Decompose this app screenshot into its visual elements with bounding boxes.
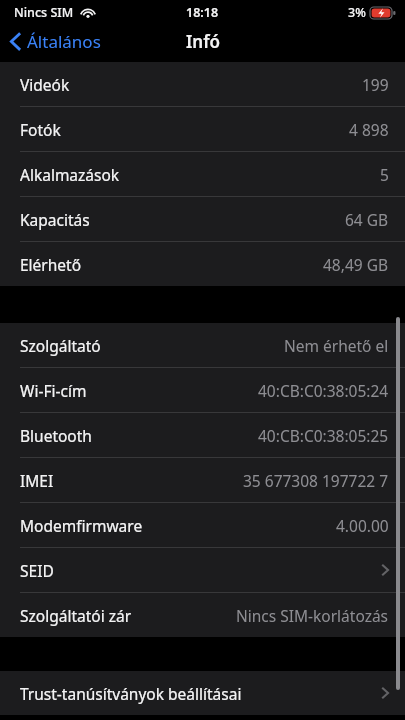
staticText: Nincs SIM [14, 4, 74, 21]
staticText: Nem érhető el [284, 335, 389, 356]
staticText: 4 898 [349, 119, 389, 140]
staticText: 64 GB [345, 209, 389, 230]
staticText: 3% [348, 4, 366, 21]
button[interactable]: Szolgáltató [0, 323, 405, 367]
button[interactable]: Elérhető [0, 242, 405, 286]
staticText: Wi-Fi-cím [20, 380, 87, 401]
button[interactable]: Videók [0, 62, 405, 106]
staticText: Trust-tanúsítványok beállításai [20, 683, 242, 704]
staticText: Általános [27, 30, 101, 53]
button[interactable]: Bluetooth [0, 413, 405, 457]
button[interactable]: SEID [0, 548, 405, 592]
staticText: 48,49 GB [323, 254, 389, 275]
staticText: 199 [362, 74, 389, 95]
staticText: IMEI [20, 470, 54, 491]
staticText: Infó [186, 30, 220, 53]
staticText: Szolgáltató [20, 335, 101, 356]
button[interactable]: Szolgáltatói zár [0, 593, 405, 637]
staticText: Fotók [20, 119, 61, 140]
staticText: 18:18 [186, 4, 219, 21]
button[interactable]: Fotók [0, 107, 405, 151]
staticText: Nincs SIM-korlátozás [236, 605, 389, 626]
staticText: Szolgáltatói zár [20, 605, 132, 626]
staticText: SEID [20, 560, 54, 581]
button[interactable]: Alkalmazások [0, 152, 405, 196]
staticText: 4.00.00 [336, 515, 389, 536]
button[interactable]: Modemfirmware [0, 503, 405, 547]
staticText: Videók [20, 74, 70, 95]
staticText: 35 677308 197722 7 [243, 470, 389, 491]
button[interactable]: Back to Általános [0, 26, 109, 57]
staticText: Modemfirmware [20, 515, 143, 536]
staticText: 40:CB:C0:38:05:24 [258, 380, 389, 401]
staticText: Elérhető [20, 254, 82, 275]
staticText: Bluetooth [20, 425, 92, 446]
button[interactable]: Kapacitás [0, 197, 405, 241]
button[interactable]: Trust-tanúsítványok beállításai [0, 671, 405, 715]
button[interactable]: IMEI [0, 458, 405, 502]
button[interactable]: Wi-Fi-cím [0, 368, 405, 412]
staticText: 40:CB:C0:38:05:25 [258, 425, 389, 446]
staticText: Kapacitás [20, 209, 90, 230]
staticText: 5 [380, 164, 389, 185]
staticText: Alkalmazások [20, 164, 120, 185]
